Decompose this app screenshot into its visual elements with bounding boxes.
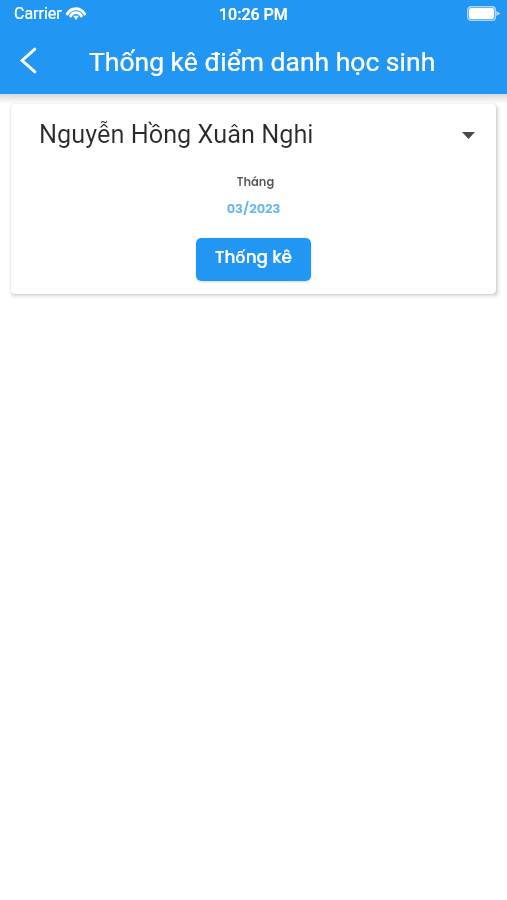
staticText: Thống kê xyxy=(215,245,292,269)
button[interactable]: Nguyễn Hồng Xuân Nghi xyxy=(11,104,496,166)
staticText: Carrier xyxy=(14,4,62,23)
staticText: Tháng xyxy=(13,174,496,190)
staticText: Nguyễn Hồng Xuân Nghi xyxy=(39,120,314,150)
staticText: Thống kê điểm danh học sinh xyxy=(89,46,436,77)
button[interactable]: Thống kê xyxy=(196,238,311,281)
button[interactable]: 03/2023 xyxy=(11,199,496,217)
button[interactable]: Back xyxy=(8,40,48,80)
staticText: 10:26 PM xyxy=(219,5,288,24)
